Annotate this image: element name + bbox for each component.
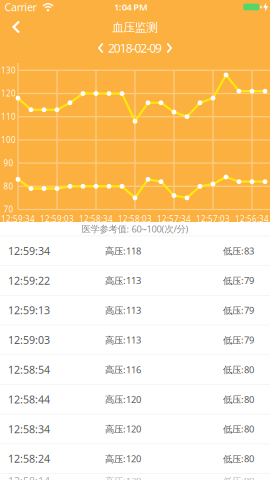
staticText: 12:59:03 bbox=[8, 333, 50, 347]
staticText: 130 bbox=[1, 65, 16, 76]
staticText: 12:59:13 bbox=[8, 303, 50, 317]
staticText: 12:58:34 bbox=[8, 422, 50, 436]
staticText: 12:58:03 bbox=[118, 213, 152, 224]
staticText: 120 bbox=[1, 88, 16, 99]
staticText: 100 bbox=[1, 135, 16, 145]
staticText: 2018-02-09 bbox=[108, 40, 162, 56]
staticText: Carrier bbox=[4, 0, 37, 14]
staticText: 高压:120 bbox=[105, 475, 141, 480]
staticText: 1:04 PM bbox=[114, 1, 148, 13]
staticText: 90 bbox=[3, 158, 13, 168]
staticText: 低压:79 bbox=[223, 334, 254, 346]
staticText: 12:59:34 bbox=[1, 213, 35, 224]
staticText: 70 bbox=[3, 204, 13, 215]
staticText: 高压:113 bbox=[105, 304, 141, 316]
staticText: 低压:80 bbox=[223, 475, 254, 480]
staticText: 12:58:44 bbox=[8, 392, 50, 406]
staticText: 血压监测 bbox=[112, 20, 158, 35]
staticText: 医学参考值: 60~100(次/分) bbox=[81, 223, 188, 235]
button[interactable] bbox=[0, 15, 30, 39]
staticText: 80 bbox=[3, 181, 13, 192]
staticText: 高压:116 bbox=[105, 363, 141, 376]
staticText: 高压:118 bbox=[105, 245, 141, 257]
staticText: 低压:79 bbox=[223, 274, 254, 287]
staticText: 110 bbox=[1, 111, 16, 122]
staticText: 高压:113 bbox=[105, 274, 141, 287]
button[interactable]: 2018-02-09 bbox=[98, 40, 172, 56]
staticText: 12:58:24 bbox=[8, 452, 50, 466]
staticText: 低压:79 bbox=[223, 304, 254, 316]
staticText: 12:57:34 bbox=[157, 213, 191, 224]
staticText: 12:58:14 bbox=[8, 474, 50, 480]
staticText: 12:56:34 bbox=[235, 213, 269, 224]
staticText: 高压:120 bbox=[105, 393, 141, 405]
staticText: 12:59:03 bbox=[40, 213, 74, 224]
staticText: 低压:80 bbox=[223, 452, 254, 465]
staticText: 低压:80 bbox=[223, 423, 254, 435]
staticText: 12:58:54 bbox=[8, 362, 50, 377]
staticText: 低压:80 bbox=[223, 393, 254, 405]
staticText: 高压:113 bbox=[105, 334, 141, 346]
staticText: 12:58:34 bbox=[79, 213, 113, 224]
staticText: 低压:83 bbox=[223, 245, 254, 257]
staticText: 低压:80 bbox=[223, 363, 254, 376]
staticText: 12:57:03 bbox=[196, 213, 230, 224]
staticText: 高压:120 bbox=[105, 423, 141, 435]
staticText: 12:59:34 bbox=[8, 244, 50, 258]
staticText: 高压:120 bbox=[105, 452, 141, 465]
staticText: 12:59:22 bbox=[8, 273, 50, 288]
